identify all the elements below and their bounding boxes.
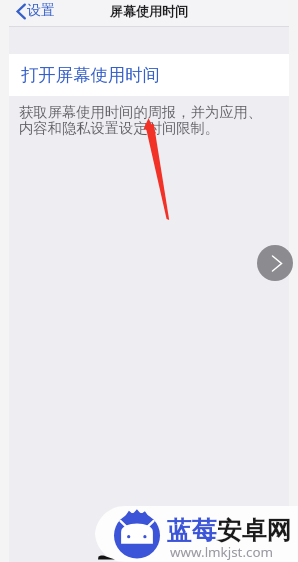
button[interactable]: 设置 bbox=[9, 2, 61, 20]
staticText: 安卓网 bbox=[217, 515, 292, 546]
staticText: 获取屏幕使用时间的周报，并为应用、内容和隐私设置设定时间限制。 bbox=[19, 103, 266, 137]
button[interactable]: 打开屏幕使用时间 bbox=[9, 54, 289, 96]
staticText: 打开屏幕使用时间 bbox=[21, 64, 161, 86]
button[interactable]: Next page bbox=[257, 245, 293, 281]
staticText: 屏幕使用时间 bbox=[110, 3, 188, 19]
staticText: www.lmkjst.com bbox=[170, 543, 274, 561]
staticText: 设置 bbox=[27, 2, 55, 20]
staticText: 蓝莓 bbox=[167, 515, 217, 546]
